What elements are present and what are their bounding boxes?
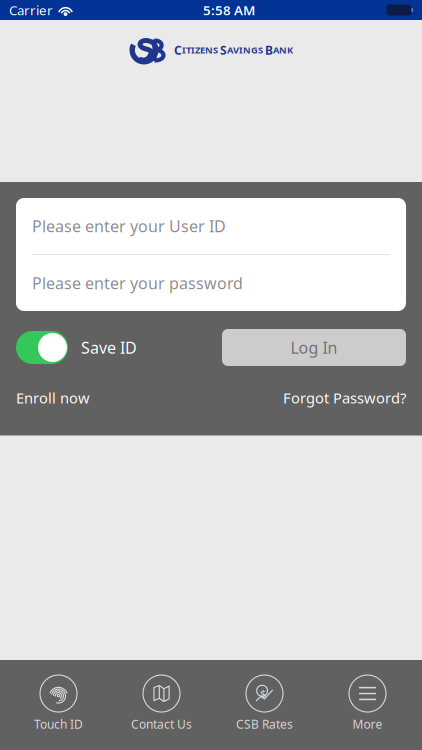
staticText: S <box>220 42 227 58</box>
staticText: Please enter your password <box>32 272 243 294</box>
button[interactable]: Please enter your User ID <box>16 198 406 254</box>
staticText: AVINGS <box>227 44 265 56</box>
button[interactable]: Enroll now <box>16 388 90 407</box>
button[interactable]: Please enter your password <box>16 255 406 311</box>
button[interactable]: Contact Us <box>110 675 213 732</box>
staticText: Enroll now <box>16 388 90 407</box>
staticText: Save ID <box>81 337 137 358</box>
staticText: Please enter your User ID <box>32 215 226 237</box>
staticText: ITIZENS <box>182 44 220 56</box>
button[interactable]: More <box>316 675 419 732</box>
staticText: Contact Us <box>131 716 192 732</box>
staticText: C <box>174 42 182 58</box>
staticText: Carrier <box>9 1 53 19</box>
staticText: ANK <box>273 44 293 56</box>
button[interactable]: Save ID <box>16 331 137 364</box>
staticText: $ <box>260 686 266 701</box>
staticText: Forgot Password? <box>283 388 406 407</box>
staticText: CSB Rates <box>236 716 293 732</box>
button[interactable]: Touch ID <box>7 675 110 732</box>
button[interactable]: $ <box>213 675 316 732</box>
staticText: Log In <box>290 337 337 358</box>
button[interactable]: Forgot Password? <box>283 388 406 407</box>
staticText: Touch ID <box>34 716 83 732</box>
staticText: More <box>352 716 382 732</box>
staticText: 5:58 AM <box>203 1 255 19</box>
staticText: B <box>265 42 273 58</box>
button[interactable]: Log In <box>222 329 406 366</box>
